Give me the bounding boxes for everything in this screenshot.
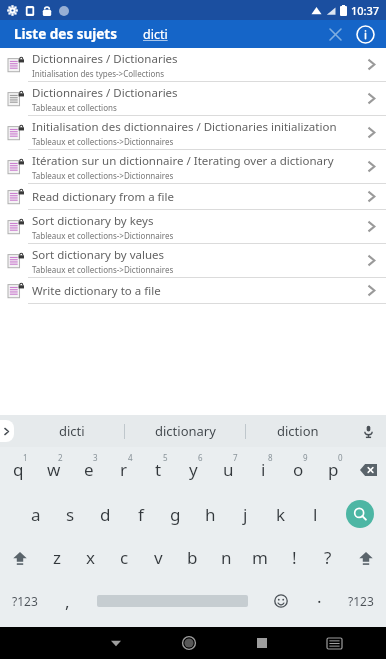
staticText: diction xyxy=(277,422,319,440)
button[interactable]: Switch keyboard xyxy=(298,627,371,659)
button[interactable]: Voice input xyxy=(350,415,386,447)
button[interactable]: dicti xyxy=(20,415,124,447)
button[interactable]: · xyxy=(302,579,336,623)
staticText: 10:37 xyxy=(351,3,380,18)
button[interactable]: o xyxy=(281,447,316,492)
button[interactable]: x xyxy=(73,536,107,579)
staticText: · xyxy=(317,590,322,613)
staticText: Tableaux et collections xyxy=(32,102,117,113)
staticText: Liste des sujets xyxy=(14,25,117,43)
staticText: 2 xyxy=(58,452,63,463)
button[interactable]: i xyxy=(246,447,281,492)
staticText: Initialisation des types->Collections xyxy=(32,68,165,79)
button[interactable]: More suggestions xyxy=(0,415,20,447)
button[interactable]: k xyxy=(263,492,298,536)
staticText: 8 xyxy=(268,452,273,463)
button[interactable]: v xyxy=(141,536,175,579)
button[interactable]: Read dictionary from a file xyxy=(0,184,386,210)
button[interactable]: , xyxy=(50,579,84,623)
staticText: Dictionnaires / Dictionaries xyxy=(32,85,178,101)
staticText: m xyxy=(252,546,268,569)
button[interactable]: g xyxy=(158,492,193,536)
button[interactable]: m xyxy=(243,536,277,579)
button[interactable]: Sort dictionary by values xyxy=(0,244,386,278)
button[interactable]: h xyxy=(193,492,228,536)
button[interactable]: Backspace xyxy=(351,447,386,492)
staticText: , xyxy=(65,590,70,613)
staticText: ! xyxy=(292,546,297,569)
button[interactable]: Emoji xyxy=(260,579,302,623)
button[interactable]: Back xyxy=(79,627,152,659)
button[interactable]: Space xyxy=(84,579,260,623)
staticText: dicti xyxy=(143,26,168,43)
button[interactable]: Clear search xyxy=(322,21,348,47)
button[interactable]: Home xyxy=(152,627,225,659)
button[interactable]: Dictionnaires / Dictionaries xyxy=(0,48,386,82)
button[interactable]: b xyxy=(175,536,209,579)
staticText: e xyxy=(84,458,94,481)
button[interactable]: j xyxy=(228,492,263,536)
staticText: w xyxy=(47,458,61,481)
staticText: y xyxy=(189,458,198,481)
button[interactable]: ! xyxy=(277,536,311,579)
button[interactable]: t xyxy=(141,447,176,492)
button[interactable]: r xyxy=(106,447,141,492)
staticText: ?123 xyxy=(12,593,38,609)
staticText: 6 xyxy=(198,452,203,463)
staticText: a xyxy=(31,503,41,526)
button[interactable]: w xyxy=(36,447,71,492)
staticText: Sort dictionary by keys xyxy=(32,213,154,229)
button[interactable]: s xyxy=(53,492,88,536)
staticText: j xyxy=(243,503,248,526)
button[interactable]: n xyxy=(209,536,243,579)
button[interactable]: p xyxy=(316,447,351,492)
staticText: f xyxy=(138,503,144,526)
staticText: Write dictionary to a file xyxy=(32,283,161,299)
button[interactable]: ?123 xyxy=(0,579,50,623)
button[interactable]: l xyxy=(298,492,333,536)
button[interactable]: z xyxy=(40,536,73,579)
staticText: v xyxy=(154,546,163,569)
button[interactable]: Shift xyxy=(345,536,386,579)
button[interactable]: f xyxy=(123,492,158,536)
staticText: Tableaux et collections->Dictionnaires xyxy=(32,136,174,147)
staticText: h xyxy=(205,503,216,526)
staticText: i xyxy=(261,458,266,481)
staticText: 4 xyxy=(128,452,133,463)
staticText: s xyxy=(66,503,75,526)
staticText: n xyxy=(221,546,232,569)
button[interactable]: Shift xyxy=(0,536,40,579)
staticText: 7 xyxy=(233,452,238,463)
button[interactable]: q xyxy=(0,447,36,492)
button[interactable]: ? xyxy=(311,536,345,579)
staticText: 1 xyxy=(23,452,28,463)
staticText: b xyxy=(187,546,198,569)
staticText: Tableaux et collections->Dictionnaires xyxy=(32,170,174,181)
staticText: Itération sur un dictionnaire / Iteratin… xyxy=(32,153,334,169)
staticText: u xyxy=(223,458,234,481)
button[interactable]: a xyxy=(18,492,53,536)
button[interactable]: y xyxy=(176,447,211,492)
button[interactable]: dictionary xyxy=(125,415,245,447)
button[interactable]: u xyxy=(211,447,246,492)
button[interactable]: Itération sur un dictionnaire / Iteratin… xyxy=(0,150,386,184)
button[interactable]: Sort dictionary by keys xyxy=(0,210,386,244)
staticText: Tableaux et collections->Dictionnaires xyxy=(32,230,174,241)
staticText: o xyxy=(293,458,304,481)
staticText: q xyxy=(13,458,24,481)
button[interactable]: Info xyxy=(352,21,378,47)
button[interactable]: Write dictionary to a file xyxy=(0,278,386,304)
button[interactable]: Search xyxy=(333,492,386,536)
button[interactable]: e xyxy=(71,447,106,492)
staticText: ? xyxy=(324,546,332,569)
button[interactable]: diction xyxy=(246,415,350,447)
button[interactable]: Initialisation des dictionnaires / Dicti… xyxy=(0,116,386,150)
staticText: t xyxy=(155,458,162,481)
button[interactable]: d xyxy=(88,492,123,536)
button[interactable]: Recent apps xyxy=(225,627,298,659)
staticText: Initialisation des dictionnaires / Dicti… xyxy=(32,119,337,135)
button[interactable]: ?123 xyxy=(336,579,386,623)
button[interactable]: c xyxy=(107,536,141,579)
staticText: dictionary xyxy=(155,422,216,440)
button[interactable]: Dictionnaires / Dictionaries xyxy=(0,82,386,116)
